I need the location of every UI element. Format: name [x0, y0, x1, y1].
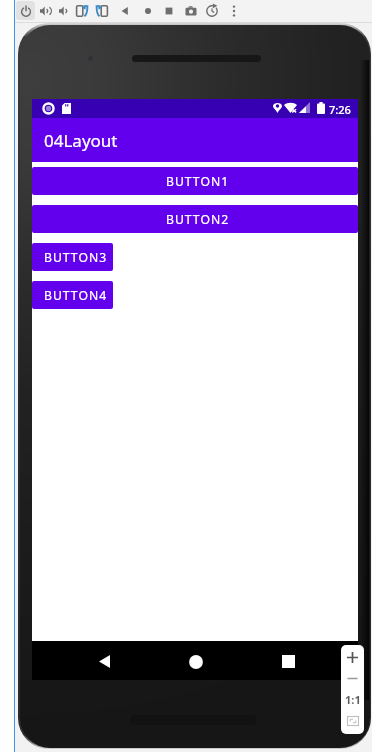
- staticText: BUTTON2: [166, 211, 230, 228]
- button[interactable]: BUTTON1: [32, 167, 358, 195]
- staticText: 7:26: [329, 102, 351, 117]
- button[interactable]: Home: [170, 641, 222, 680]
- button[interactable]: Recent apps: [262, 641, 314, 680]
- button[interactable]: Power: [16, 1, 35, 20]
- button[interactable]: Back: [78, 641, 130, 680]
- button[interactable]: Back: [115, 1, 134, 20]
- button[interactable]: Zoom out: [341, 668, 364, 689]
- button[interactable]: Home: [138, 1, 157, 20]
- button[interactable]: BUTTON4: [32, 281, 113, 309]
- button[interactable]: Rotate left: [72, 1, 91, 20]
- staticText: 04Layout: [44, 129, 118, 152]
- button[interactable]: Zoom to actual size: [341, 689, 364, 710]
- staticText: BUTTON4: [44, 287, 108, 304]
- button[interactable]: Overview: [159, 1, 178, 20]
- button[interactable]: BUTTON2: [32, 205, 358, 233]
- staticText: BUTTON3: [44, 249, 108, 266]
- button[interactable]: Zoom in: [341, 647, 364, 668]
- button[interactable]: BUTTON3: [32, 243, 113, 271]
- button[interactable]: Volume down: [53, 1, 72, 20]
- button[interactable]: History: [202, 1, 221, 20]
- button[interactable]: Screenshot: [181, 1, 200, 20]
- staticText: BUTTON1: [166, 173, 230, 190]
- button[interactable]: More: [224, 1, 243, 20]
- button[interactable]: Rotate right: [92, 1, 111, 20]
- button[interactable]: Volume up: [35, 1, 54, 20]
- button[interactable]: Zoom to fit: [341, 710, 364, 731]
- staticText: 1:1: [345, 692, 361, 707]
